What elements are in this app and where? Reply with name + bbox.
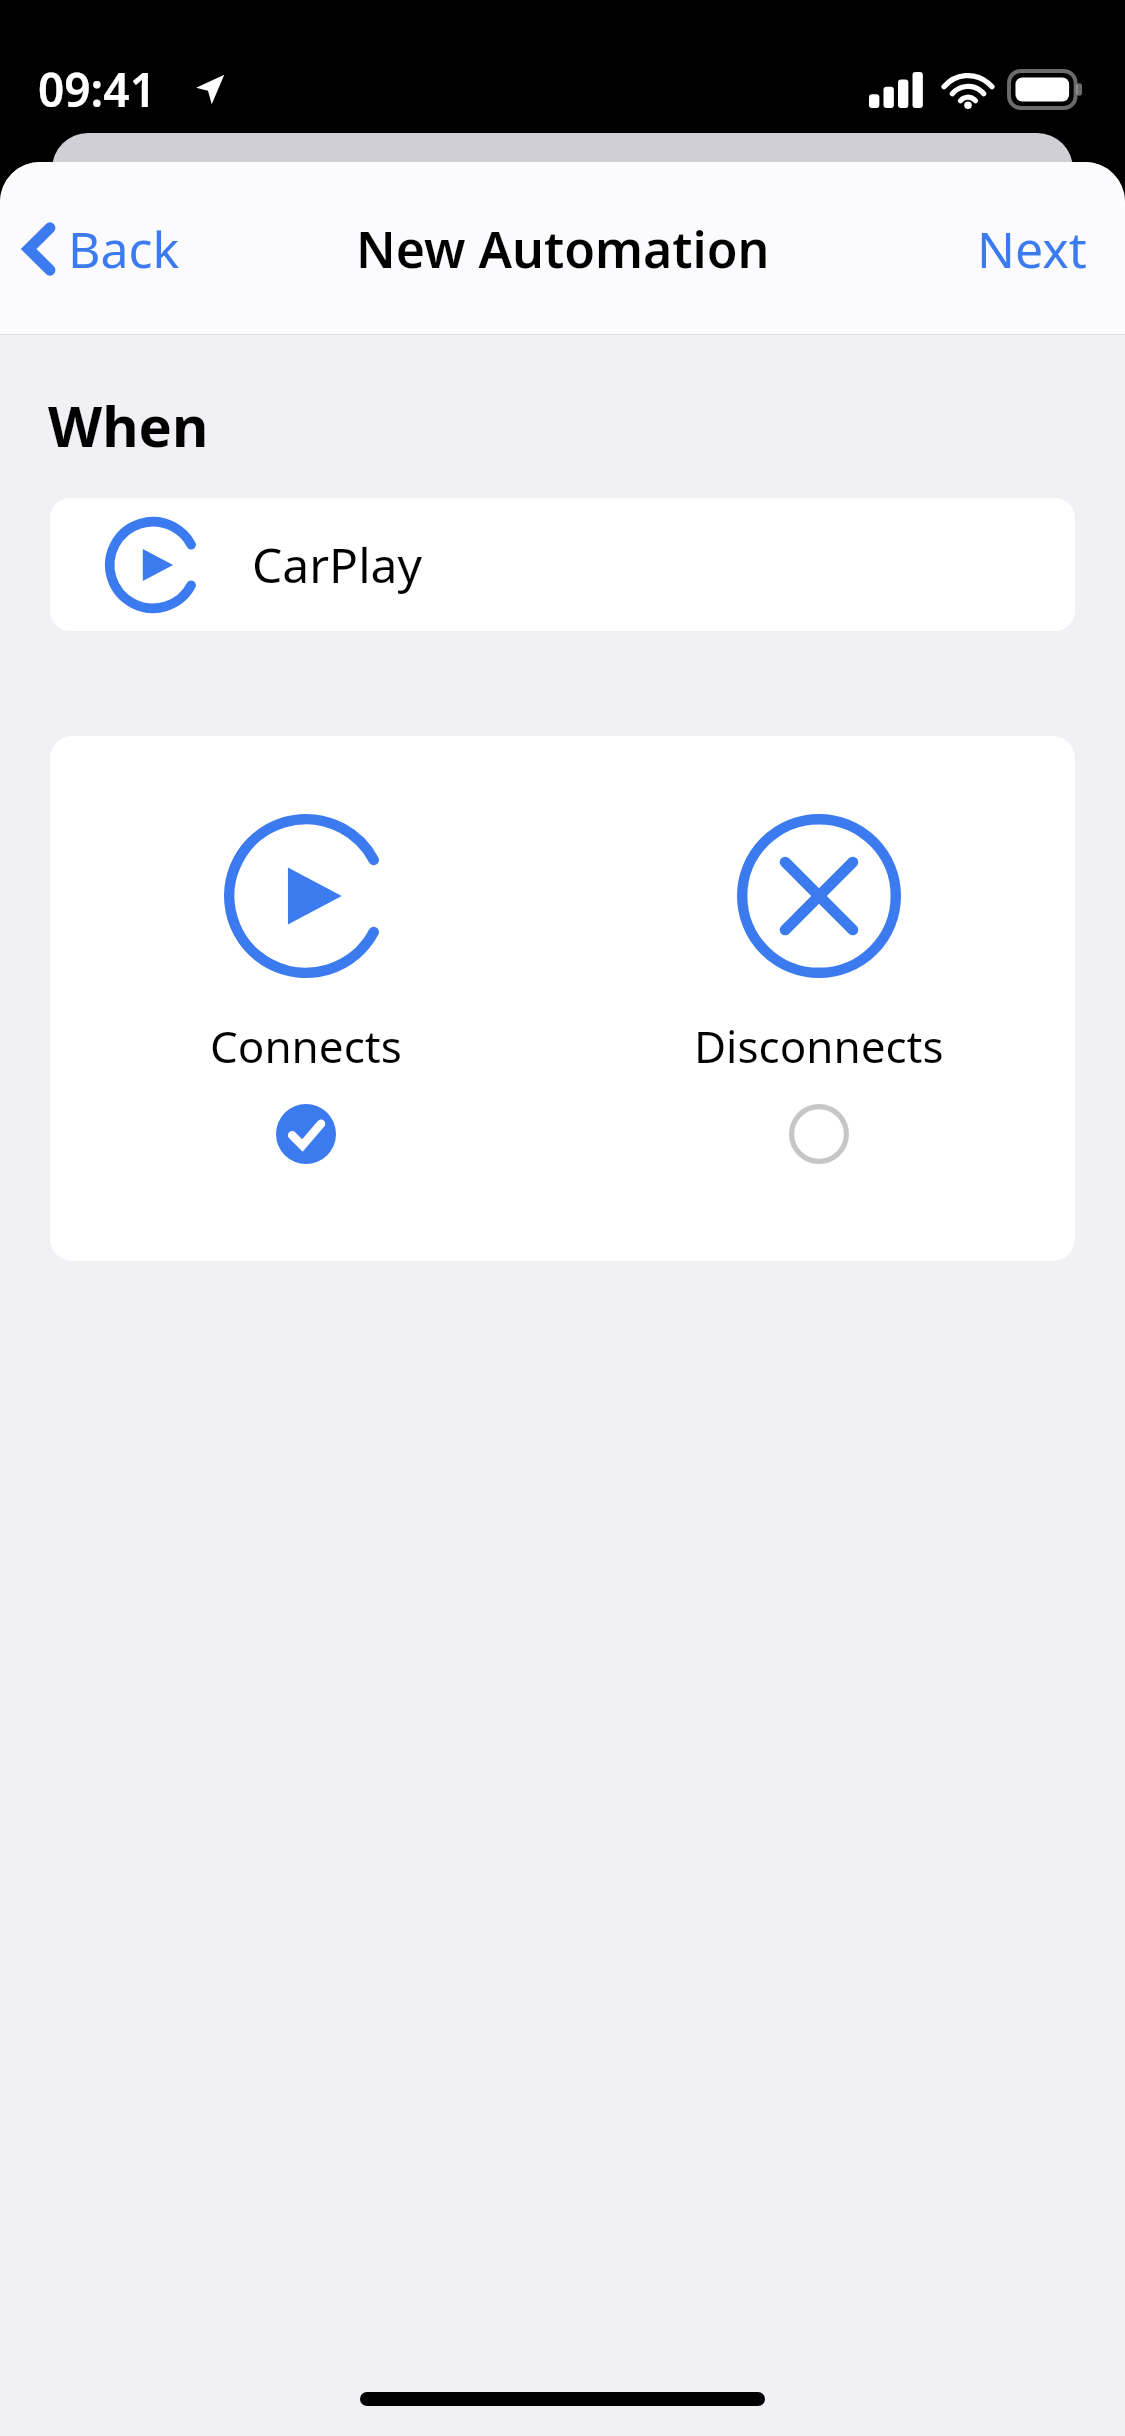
button[interactable]: CarPlay: [50, 498, 1075, 631]
staticText: CarPlay: [252, 532, 422, 597]
staticText: When: [48, 387, 209, 463]
staticText: Next: [977, 215, 1087, 283]
staticText: Back: [68, 215, 180, 283]
staticText: Disconnects: [694, 1016, 944, 1076]
staticText: 09:41: [38, 58, 156, 121]
button[interactable]: Next: [939, 162, 1125, 335]
staticText: Connects: [210, 1016, 402, 1076]
button[interactable]: Connects: [50, 736, 562, 1261]
staticText: New Automation: [356, 215, 770, 283]
button[interactable]: Back: [0, 162, 204, 335]
button[interactable]: Disconnects: [562, 736, 1075, 1261]
